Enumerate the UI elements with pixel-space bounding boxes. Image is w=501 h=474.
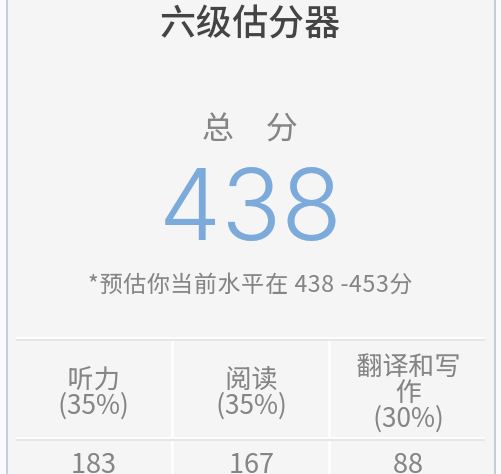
button[interactable]: 183 <box>16 441 171 474</box>
staticText: 438 <box>159 144 342 264</box>
button[interactable]: 阅读 (35%) <box>174 341 328 437</box>
staticText: 阅读 (35%) <box>216 358 287 421</box>
staticText: 听力 (35%) <box>58 358 129 421</box>
staticText: 167 <box>229 442 274 474</box>
button[interactable]: 88 <box>331 441 485 474</box>
staticText: *预估你当前水平在 438 -453分 <box>88 265 413 298</box>
button[interactable]: 六级估分器 <box>160 0 341 45</box>
button[interactable]: 167 <box>174 441 328 474</box>
button[interactable]: 听力 (35%) <box>16 341 171 437</box>
staticText: 183 <box>71 442 116 474</box>
staticText: 翻译和写 作 (30%) <box>356 345 461 434</box>
button[interactable]: 翻译和写 作 (30%) <box>331 341 485 437</box>
staticText: 总 分 <box>202 102 299 148</box>
staticText: 88 <box>393 442 423 474</box>
